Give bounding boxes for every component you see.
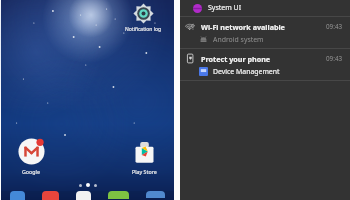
button[interactable]: Google [8, 137, 54, 175]
staticText: Android system [213, 35, 264, 44]
button[interactable]: Dock shortcut [10, 191, 25, 200]
button[interactable]: Dock shortcut [108, 191, 129, 199]
button[interactable]: Dock shortcut [76, 191, 91, 200]
button[interactable]: Play Store [121, 137, 167, 175]
button[interactable]: System UI [180, 0, 350, 16]
staticText: Device Management [213, 67, 280, 76]
staticText: Play Store [132, 168, 157, 175]
button[interactable]: Dock shortcut [42, 191, 59, 200]
button[interactable]: Protect your phone [180, 49, 350, 80]
staticText: Wi-Fi network available [201, 22, 285, 32]
button[interactable]: Dock shortcut [146, 191, 165, 198]
staticText: System UI [208, 3, 242, 13]
button[interactable]: Wi-Fi network available [180, 17, 350, 48]
staticText: 09:43 [326, 54, 343, 63]
staticText: Notification log [125, 26, 162, 33]
staticText: Google [22, 168, 40, 175]
button[interactable]: Notification log [119, 3, 167, 33]
staticText: Protect your phone [201, 54, 271, 64]
other: Notification log [133, 3, 154, 24]
staticText: 09:43 [326, 22, 343, 31]
